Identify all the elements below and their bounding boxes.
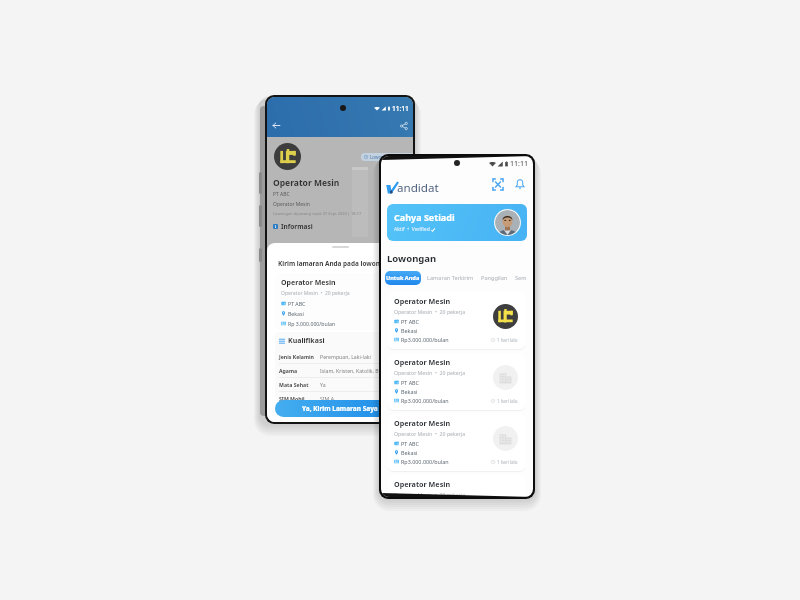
staticText: Ya, Kirim Lamaran Saya — [302, 404, 378, 413]
staticText: Islam, Kristen, Katolik, Bu — [320, 367, 382, 374]
staticText: PT ABC — [288, 300, 306, 307]
button[interactable]: Share — [400, 122, 408, 130]
staticText: Cahya Setiadi — [394, 211, 455, 223]
staticText: PT ABC — [273, 191, 290, 198]
staticText: Ya — [320, 381, 326, 388]
button[interactable]: andidat — [386, 179, 441, 195]
button[interactable]: Operator Mesin — [388, 292, 525, 349]
button[interactable]: Sem — [515, 274, 527, 282]
staticText: Operator Mesin — [281, 278, 336, 288]
button[interactable]: Notifications — [513, 177, 527, 191]
staticText: Kirim lamaran Anda pada lowongan ini? — [278, 259, 405, 268]
staticText: Operator Mesin — [273, 177, 340, 189]
staticText: Operator Mesin — [394, 296, 451, 306]
staticText: Jenis Kelamin — [279, 353, 320, 360]
button[interactable]: Operator Mesin — [388, 353, 525, 410]
staticText: 1 hari lalu — [497, 337, 518, 343]
button[interactable]: Operator Mesin — [388, 414, 525, 471]
staticText: SIM Mobil — [279, 395, 320, 402]
staticText: Rp3.000.000/bulan — [401, 397, 449, 404]
staticText: Operator Mesin • 20 pekerja — [394, 491, 466, 497]
staticText: Mata Sehat — [279, 381, 320, 388]
button[interactable]: Operator Mesin — [388, 475, 525, 497]
staticText: Operator Mesin — [394, 418, 451, 428]
staticText: PT ABC — [401, 440, 420, 447]
staticText: Rp3.000.000/bulan — [401, 336, 449, 343]
button[interactable]: Ya, Kirim Lamaran Saya — [275, 400, 405, 417]
staticText: Lowongan — [387, 252, 437, 265]
staticText: SIM A — [320, 395, 334, 402]
staticText: 1 hari lalu — [497, 459, 518, 465]
staticText: Informasi — [281, 222, 313, 231]
staticText: Bekasi — [401, 327, 418, 334]
staticText: andidat — [397, 180, 439, 196]
button[interactable]: Scan QR — [491, 177, 505, 191]
staticText: Agama — [279, 367, 320, 374]
staticText: Operator Mesin • 20 pekerja — [281, 290, 350, 297]
staticText: Bekasi — [288, 310, 304, 317]
button[interactable]: Panggilan — [481, 274, 508, 282]
staticText: Kualifikasi — [288, 336, 325, 346]
staticText: Operator Mesin • 20 pekerja — [394, 369, 466, 376]
staticText: Rp3.000.000/bulan — [401, 458, 449, 465]
staticText: 11:11 — [510, 159, 528, 169]
staticText: Operator Mesin — [273, 201, 310, 208]
staticText: 1 hari lalu — [497, 398, 518, 404]
staticText: PT ABC — [401, 379, 420, 386]
staticText: Rp 3.000.000/bulan — [288, 320, 336, 327]
staticText: 11:11 — [392, 104, 409, 113]
staticText: Operator Mesin • 20 pekerja — [394, 430, 466, 437]
staticText: Operator Mesin • 20 pekerja — [394, 308, 466, 315]
staticText: Bekasi — [401, 449, 418, 456]
staticText: Perempuan, Laki-laki — [320, 353, 371, 360]
staticText: Aktif • Verified — [394, 226, 430, 233]
staticText: Operator Mesin — [394, 479, 451, 489]
button[interactable]: Lamaran Terkirim — [427, 274, 474, 282]
staticText: Bekasi — [401, 388, 418, 395]
staticText: Operator Mesin — [394, 357, 451, 367]
staticText: Lowongan dipasang sejak 07 Sept 2020 | 1… — [273, 211, 362, 216]
button[interactable]: Back — [272, 121, 281, 130]
staticText: Lowongan dipasang — [370, 154, 413, 160]
staticText: Untuk Anda — [386, 274, 420, 282]
button[interactable]: Untuk Anda — [385, 271, 421, 285]
button[interactable]: Cahya Setiadi — [387, 204, 527, 241]
staticText: PT ABC — [401, 318, 420, 325]
